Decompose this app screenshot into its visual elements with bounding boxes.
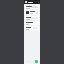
- button[interactable]: Menu: [25, 1, 27, 3]
- button[interactable]: Compose: [35, 60, 38, 63]
- button[interactable]: [25, 10, 39, 15]
- button[interactable]: [25, 21, 39, 25]
- button[interactable]: [25, 16, 39, 20]
- button[interactable]: [25, 26, 39, 30]
- button[interactable]: [25, 5, 39, 9]
